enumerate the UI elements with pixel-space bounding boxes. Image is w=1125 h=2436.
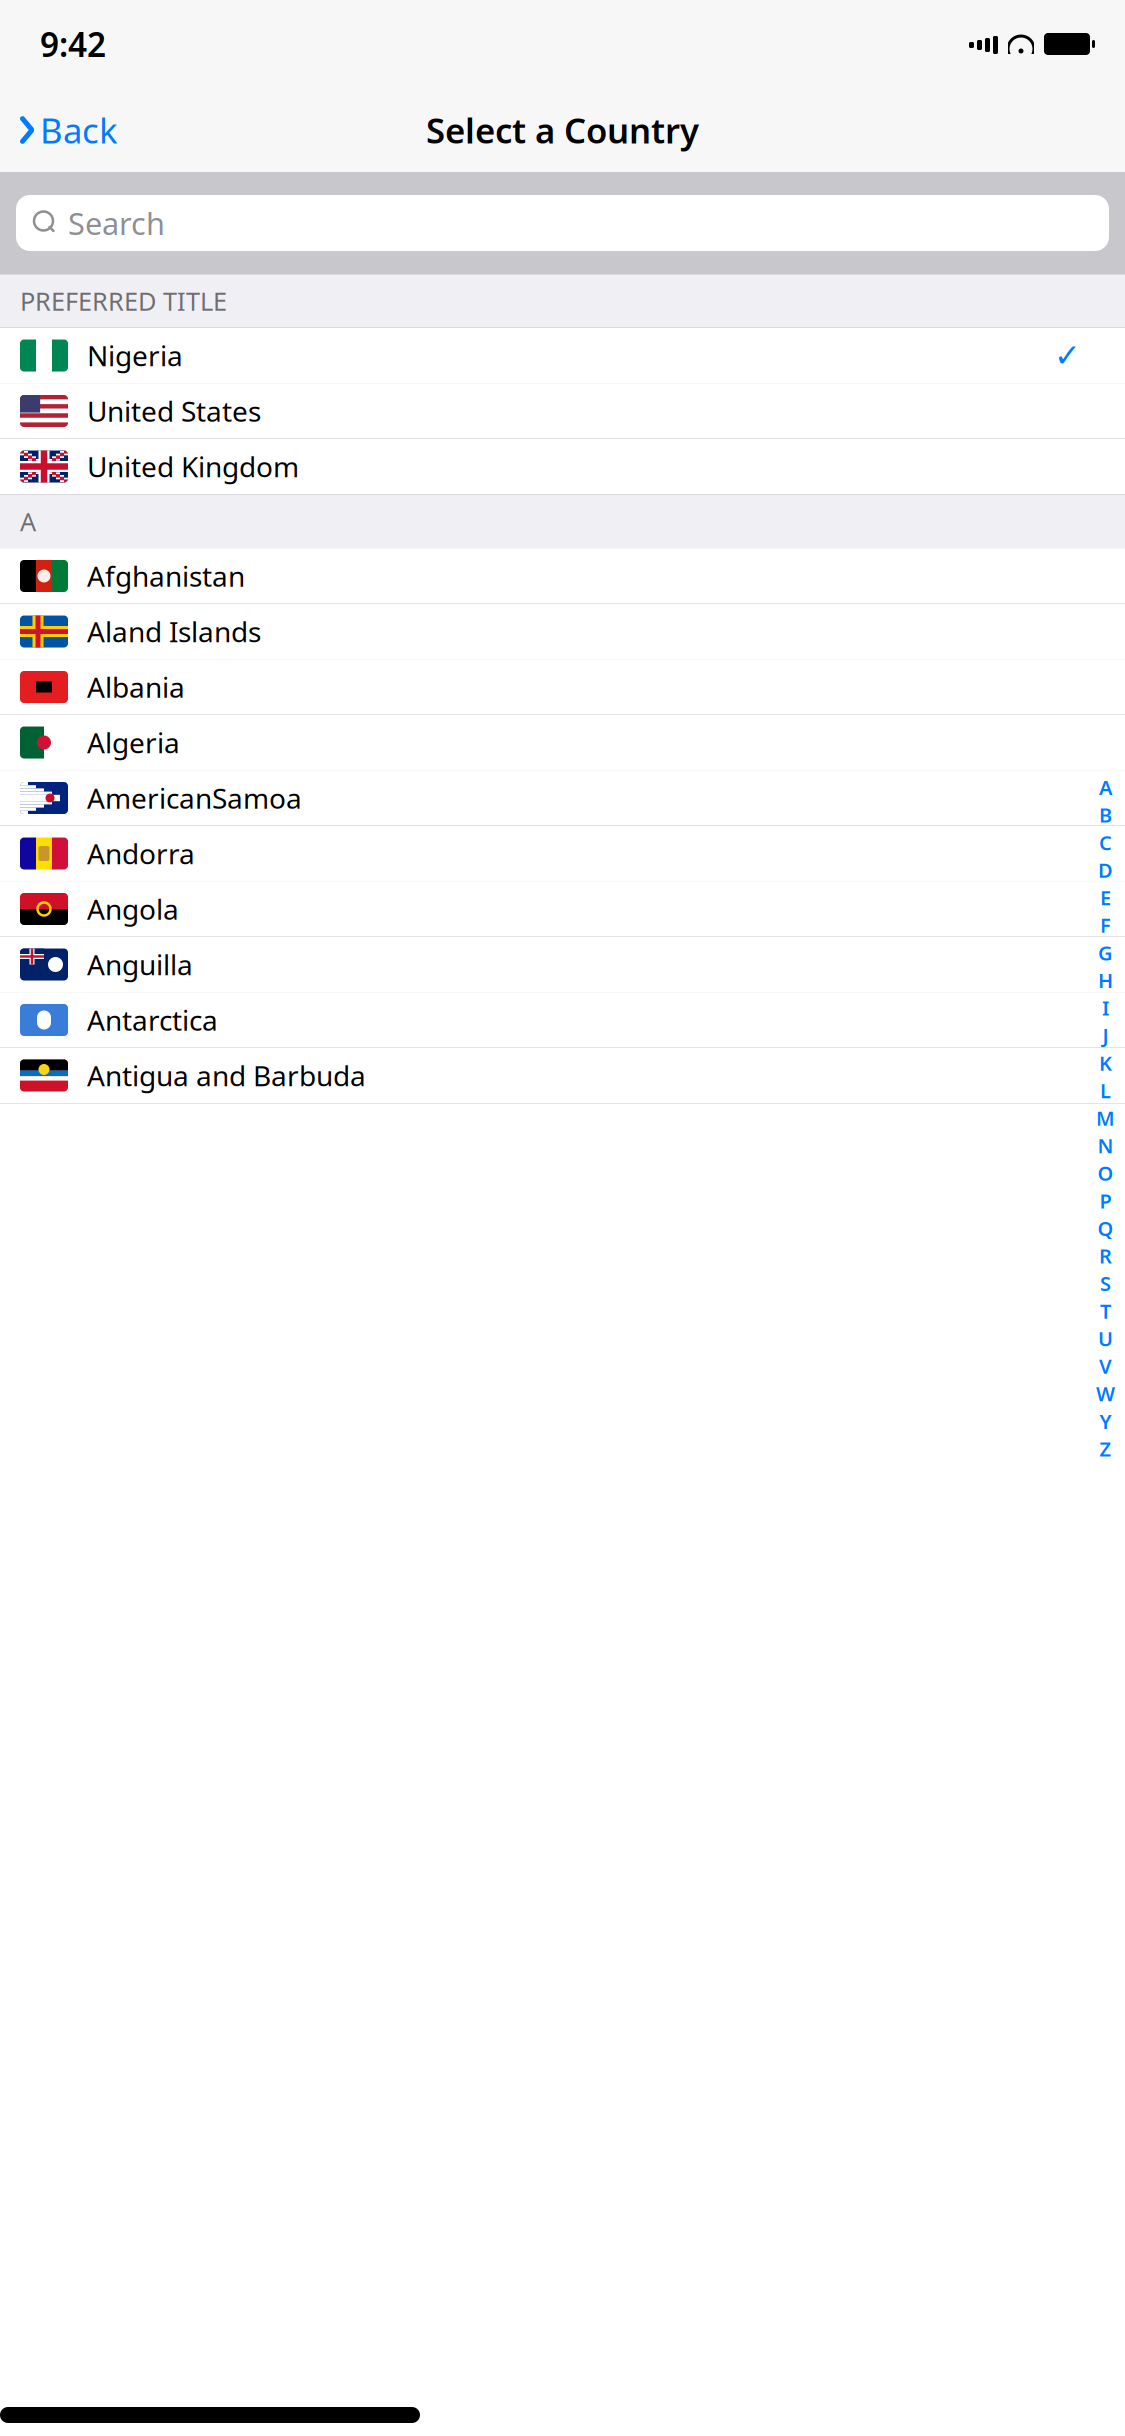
staticText: A [20,505,36,538]
button[interactable]: Angola [0,881,1125,937]
staticText: S [1100,1270,1111,1297]
staticText: Search [68,203,165,243]
staticText: E [1100,884,1111,911]
staticText: PREFERRED TITLE [20,284,227,318]
staticText: R [1099,1242,1112,1269]
staticText: P [1099,1187,1111,1214]
button[interactable]: Antarctica [0,992,1125,1048]
staticText: Antigua and Barbuda [87,1057,366,1094]
button[interactable]: United States [0,383,1125,439]
button[interactable]: United Kingdom [0,439,1125,494]
staticText: H [1098,967,1113,993]
staticText: Nigeria [87,337,183,374]
staticText: W [1096,1380,1115,1407]
button[interactable]: AmericanSamoa [0,770,1125,826]
staticText: AmericanSamoa [87,779,302,817]
staticText: F [1100,912,1111,938]
staticText: Afghanistan [87,557,245,595]
button[interactable]: Algeria [0,715,1125,770]
staticText: L [1100,1077,1111,1104]
staticText: Back [40,107,118,153]
staticText: Q [1097,1215,1113,1242]
staticText: Angola [87,890,179,928]
staticText: United Kingdom [87,448,299,485]
button[interactable]: Back [0,99,118,161]
staticText: 9:42 [40,22,106,66]
staticText: T [1100,1298,1111,1324]
staticText: Anguilla [87,946,193,983]
button[interactable]: Andorra [0,826,1125,881]
staticText: ✓ [1054,337,1081,374]
staticText: Albania [87,668,185,706]
button[interactable]: Anguilla [0,937,1125,992]
staticText: M [1096,1105,1115,1131]
button[interactable]: Antigua and Barbuda [0,1048,1125,1103]
staticText: Algeria [87,724,180,761]
staticText: K [1099,1050,1112,1076]
staticText: V [1099,1353,1112,1379]
staticText: I [1102,994,1109,1021]
button[interactable]: Aland Islands [0,604,1125,659]
staticText: Andorra [87,835,195,872]
button[interactable]: Afghanistan [0,548,1125,604]
staticText: U [1098,1325,1113,1352]
button[interactable]: Section index [1090,770,1121,1466]
staticText: D [1098,857,1113,883]
staticText: G [1098,939,1113,966]
staticText: C [1099,829,1112,856]
staticText: A [1099,774,1112,801]
staticText: Z [1099,1435,1111,1462]
button[interactable]: Albania [0,659,1125,715]
button[interactable]: Nigeria [0,328,1125,383]
staticText: Antarctica [87,1001,218,1039]
staticText: United States [87,392,261,430]
staticText: Aland Islands [87,613,261,650]
staticText: Select a Country [426,107,699,153]
staticText: Y [1099,1408,1111,1434]
staticText: B [1099,802,1112,828]
staticText: O [1097,1160,1113,1186]
staticText: J [1102,1022,1108,1049]
staticText: N [1097,1132,1113,1159]
